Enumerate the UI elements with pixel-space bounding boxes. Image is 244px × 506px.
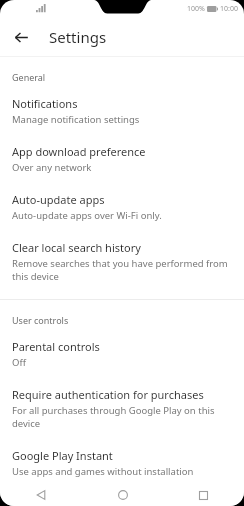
button[interactable]: Notifications bbox=[0, 87, 244, 135]
button[interactable]: Back bbox=[9, 25, 33, 49]
button[interactable]: Auto-update apps bbox=[0, 183, 244, 231]
staticText: Clear local search history bbox=[12, 240, 141, 255]
staticText: Auto-update apps bbox=[12, 192, 105, 207]
staticText: Remove searches that you have performed … bbox=[12, 257, 230, 283]
staticText: 100% bbox=[187, 4, 205, 14]
staticText: For all purchases through Google Play on… bbox=[12, 404, 230, 430]
button[interactable]: Home bbox=[82, 484, 163, 506]
button[interactable]: Require authentication for purchases bbox=[0, 378, 244, 439]
button[interactable]: Clear local search history bbox=[0, 231, 244, 292]
button[interactable]: Google Play Instant bbox=[0, 439, 244, 487]
staticText: Auto-update apps over Wi-Fi only. bbox=[12, 209, 162, 222]
button[interactable]: Recent apps bbox=[163, 484, 244, 506]
staticText: Use apps and games without installation bbox=[12, 465, 194, 478]
staticText: App download preference bbox=[12, 144, 146, 159]
staticText: Parental controls bbox=[12, 339, 100, 354]
staticText: User controls bbox=[12, 314, 69, 326]
button[interactable]: App download preference bbox=[0, 135, 244, 183]
staticText: General bbox=[12, 71, 46, 83]
staticText: Off bbox=[12, 356, 26, 369]
staticText: Settings bbox=[49, 27, 107, 47]
staticText: 10:00 bbox=[220, 4, 238, 14]
button[interactable]: Parental controls bbox=[0, 330, 244, 378]
staticText: Require authentication for purchases bbox=[12, 387, 204, 402]
staticText: Manage notification settings bbox=[12, 113, 140, 126]
staticText: Over any network bbox=[12, 161, 92, 174]
staticText: Google Play Instant bbox=[12, 448, 113, 463]
staticText: Notifications bbox=[12, 96, 78, 111]
button[interactable]: Back bbox=[0, 484, 82, 506]
